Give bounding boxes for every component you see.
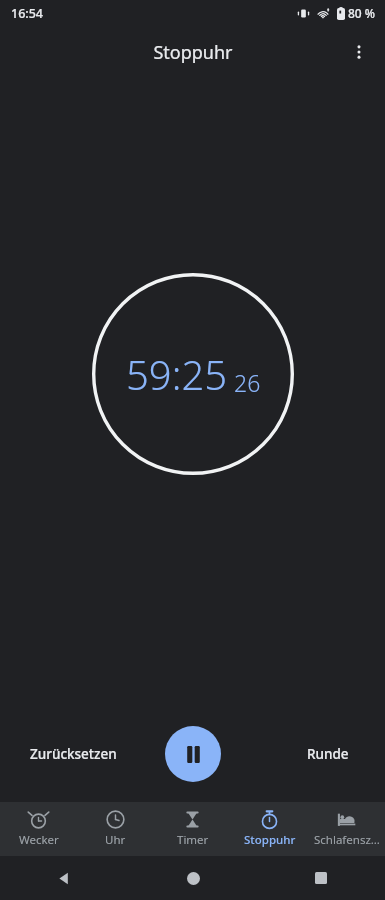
staticText: Uhr <box>105 832 126 848</box>
staticText: Zurücksetzen <box>30 745 117 763</box>
staticText: Runde <box>307 745 349 763</box>
staticText: Wecker <box>19 832 59 848</box>
button[interactable]: Weitere Optionen <box>339 32 379 72</box>
staticText: Schlafensz… <box>314 832 380 848</box>
staticText: 26 <box>234 367 261 398</box>
button[interactable]: Stoppuhr <box>231 802 308 856</box>
button[interactable]: Zurück <box>0 856 129 900</box>
button[interactable]: Uhr <box>77 802 154 856</box>
staticText: Stoppuhr <box>244 832 296 848</box>
button[interactable]: Startbildschirm <box>129 856 257 900</box>
staticText: 59:25 <box>126 347 228 401</box>
button[interactable]: Übersicht <box>257 856 385 900</box>
staticText: Stoppuhr <box>153 40 233 65</box>
button[interactable]: Pause <box>165 726 221 782</box>
staticText: 16:54 <box>11 5 44 22</box>
staticText: 80 % <box>348 5 376 21</box>
button[interactable]: Runde <box>291 735 365 773</box>
button[interactable]: Schlafensz… <box>308 802 385 856</box>
button[interactable]: Wecker <box>0 802 77 856</box>
button[interactable]: Zurücksetzen <box>14 735 133 773</box>
button[interactable]: Timer <box>154 802 231 856</box>
staticText: Timer <box>177 832 209 848</box>
